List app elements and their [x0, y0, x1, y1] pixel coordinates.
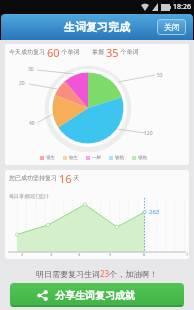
staticText: 很熟: [138, 155, 147, 161]
staticText: 个单词: [60, 48, 80, 56]
staticText: 天: [72, 174, 80, 182]
staticText: 生词复习完成: [64, 20, 130, 34]
staticText: 分享生词复习成就: [55, 289, 135, 302]
staticText: 3: [50, 252, 53, 257]
staticText: 40: [29, 120, 35, 127]
staticText: 60: [47, 45, 60, 58]
staticText: 20: [19, 80, 25, 87]
staticText: 4: [78, 252, 81, 257]
staticText: 263: [149, 208, 160, 216]
staticText: 30: [28, 66, 34, 73]
staticText: 今天成功复习: [9, 48, 47, 56]
staticText: 6: [143, 252, 146, 257]
staticText: 53: [157, 72, 163, 79]
staticText: 很生: [46, 155, 55, 161]
staticText: 每日掌握词汇统计: [9, 193, 49, 199]
staticText: 掌握: [92, 48, 106, 56]
staticText: 35: [106, 45, 119, 58]
staticText: 120: [144, 130, 153, 137]
button[interactable]: 分享生词复习成就: [10, 283, 184, 307]
staticText: 个单词: [119, 48, 139, 56]
staticText: 您已成功坚持复习: [9, 174, 59, 182]
staticText: 7: [186, 252, 189, 257]
staticText: 5: [109, 252, 112, 257]
staticText: 2: [21, 252, 24, 257]
staticText: 较生: [69, 155, 78, 161]
staticText: 较熟: [115, 155, 124, 161]
staticText: 18:26: [173, 2, 191, 12]
button[interactable]: 关闭: [157, 19, 186, 35]
staticText: 明日需要复习生词23个，加油啊！: [36, 268, 158, 279]
staticText: 16: [59, 171, 72, 184]
staticText: 一般: [92, 155, 101, 161]
staticText: 关闭: [164, 22, 180, 32]
